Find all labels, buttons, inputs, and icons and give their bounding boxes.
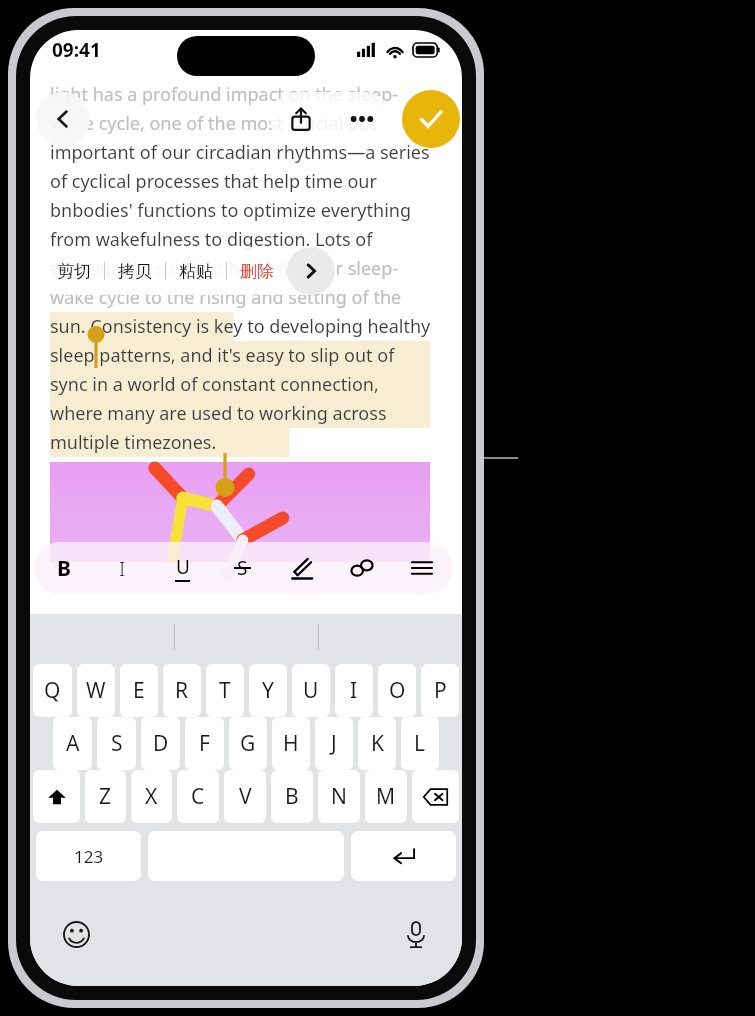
staticText: bnbodies' functions to optimize everythi… [50, 198, 412, 223]
button[interactable]: List [392, 542, 452, 594]
button[interactable]: I [335, 664, 373, 717]
staticText: U [303, 676, 319, 705]
button[interactable]: More options [331, 92, 392, 146]
staticText: 09:41 [52, 37, 101, 63]
button[interactable]: Z [85, 770, 126, 823]
staticText: H [283, 729, 299, 758]
staticText: S [111, 729, 123, 758]
staticText: Z [99, 782, 112, 811]
staticText: S [237, 555, 248, 581]
button[interactable]: Return [351, 831, 456, 881]
button[interactable]: Bold [34, 542, 93, 594]
staticText: 拷贝 [118, 261, 152, 282]
staticText: 删除 [240, 261, 274, 282]
button[interactable]: T [206, 664, 244, 717]
button[interactable]: V [224, 770, 266, 823]
button[interactable]: 剪切 [44, 247, 104, 295]
staticText: F [199, 729, 210, 758]
staticText: L [414, 729, 426, 758]
staticText: W [86, 676, 106, 705]
staticText: from wakefulness to digestion. Lots of [50, 227, 373, 252]
staticText: sleep patterns, and it's easy to slip ou… [50, 343, 395, 368]
button[interactable]: Done [402, 90, 460, 148]
button[interactable]: 删除 [227, 247, 287, 295]
staticText: I [119, 555, 126, 582]
button[interactable]: H [272, 717, 310, 770]
button[interactable]: W [77, 664, 115, 717]
button[interactable]: X [131, 770, 172, 823]
staticText: sun. Consistency is key to developing he… [50, 314, 431, 339]
staticText: of cyclical processes that help time our [50, 169, 377, 194]
button[interactable]: B [271, 770, 313, 823]
staticText: R [175, 676, 189, 705]
button[interactable]: U [292, 664, 330, 717]
button[interactable]: P [421, 664, 459, 717]
button[interactable]: Italic [93, 542, 152, 594]
staticText: P [434, 676, 447, 705]
button[interactable]: Q [33, 664, 72, 717]
staticText: I [350, 676, 358, 705]
button[interactable]: Link [332, 542, 392, 594]
staticText: exposure to sunlight helps link our slee… [50, 256, 399, 281]
staticText: Q [44, 676, 61, 705]
staticText: V [239, 782, 252, 811]
button[interactable]: 粘贴 [166, 247, 226, 295]
staticText: J [331, 729, 337, 758]
staticText: sync in a world of constant connection, [50, 372, 379, 397]
button[interactable]: D [141, 717, 180, 770]
button[interactable]: Back [36, 92, 90, 146]
button[interactable]: L [401, 717, 439, 770]
button[interactable]: R [163, 664, 201, 717]
button[interactable]: O [378, 664, 416, 717]
button[interactable]: 拷贝 [105, 247, 165, 295]
button[interactable]: Strikethrough [212, 542, 272, 594]
staticText: multiple timezones. [50, 430, 217, 455]
staticText: 粘贴 [179, 261, 213, 282]
staticText: B [57, 554, 71, 583]
staticText: wake cycle, one of the most crucial but [50, 111, 377, 136]
staticText: E [133, 676, 145, 705]
staticText: B [285, 782, 299, 811]
staticText: N [331, 782, 347, 811]
button[interactable]: Emoji [56, 914, 96, 954]
staticText: light has a profound impact on the sleep… [50, 82, 399, 107]
button[interactable]: Dictate [396, 914, 436, 954]
staticText: where many are used to working across [50, 401, 387, 426]
button[interactable]: C [177, 770, 219, 823]
staticText: A [66, 729, 80, 758]
staticText: D [153, 729, 169, 758]
button[interactable]: Y [249, 664, 287, 717]
staticText: K [371, 729, 384, 758]
button[interactable]: S [97, 717, 136, 770]
staticText: G [240, 729, 256, 758]
button[interactable]: More actions [287, 247, 335, 295]
button[interactable]: 123 [36, 831, 141, 881]
button[interactable]: K [358, 717, 396, 770]
staticText: wake cycle to the rising and setting of … [50, 285, 402, 310]
staticText: M [376, 782, 396, 811]
staticText: important of our circadian rhythms—a ser… [50, 140, 430, 165]
button[interactable]: E [120, 664, 158, 717]
button[interactable]: J [315, 717, 353, 770]
button[interactable]: Underline [152, 542, 212, 594]
button[interactable]: G [229, 717, 267, 770]
button[interactable]: Highlight [272, 542, 332, 594]
button[interactable]: Backspace [412, 770, 459, 823]
button[interactable]: N [318, 770, 360, 823]
staticText: 123 [74, 845, 104, 868]
staticText: C [191, 782, 205, 811]
staticText: Sunlight and Sleep [60, 4, 292, 38]
button[interactable]: Share [270, 92, 331, 146]
staticText: X [145, 782, 158, 811]
button[interactable]: M [365, 770, 407, 823]
button[interactable]: F [185, 717, 224, 770]
button[interactable]: A [53, 717, 92, 770]
staticText: 剪切 [57, 261, 91, 282]
button[interactable]: Shift [33, 770, 80, 823]
staticText: Y [262, 676, 274, 705]
staticText: T [219, 676, 231, 705]
